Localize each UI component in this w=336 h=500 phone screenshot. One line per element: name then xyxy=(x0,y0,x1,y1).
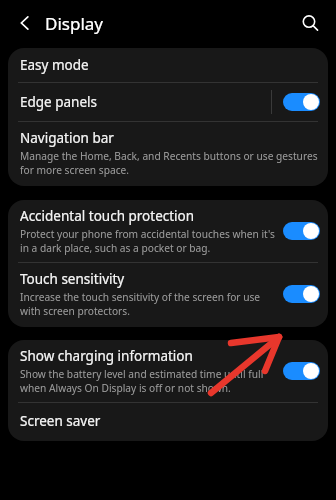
staticText: Navigation bar xyxy=(20,129,114,147)
staticText: Screen saver xyxy=(20,412,101,430)
button[interactable]: Toggle on xyxy=(283,222,320,240)
button[interactable]: Edge panels xyxy=(8,83,328,121)
button[interactable]: Search xyxy=(293,6,327,40)
staticText: Edge panels xyxy=(20,93,98,111)
staticText: Protect your phone from accidental touch… xyxy=(20,227,277,255)
button[interactable]: Touch sensitivity xyxy=(8,263,328,325)
button[interactable]: Toggle on xyxy=(283,362,320,380)
staticText: Show the battery level and estimated tim… xyxy=(20,367,277,395)
staticText: Easy mode xyxy=(20,56,89,74)
staticText: Display xyxy=(45,12,103,35)
staticText: Increase the touch sensitivity of the sc… xyxy=(20,290,277,318)
staticText: Show charging information xyxy=(20,347,193,365)
button[interactable]: Toggle on xyxy=(283,93,320,111)
staticText: Manage the Home, Back, and Recents butto… xyxy=(20,149,320,177)
button[interactable]: Navigation bar xyxy=(8,122,328,184)
button[interactable]: Accidental touch protection xyxy=(8,200,328,262)
button[interactable]: Screen saver xyxy=(8,403,328,439)
button[interactable]: Back xyxy=(8,6,42,40)
staticText: Touch sensitivity xyxy=(20,270,125,288)
button[interactable]: Show charging information xyxy=(8,340,328,402)
button[interactable]: Easy mode xyxy=(8,48,328,82)
staticText: Accidental touch protection xyxy=(20,207,195,225)
button[interactable]: Toggle on xyxy=(283,285,320,303)
